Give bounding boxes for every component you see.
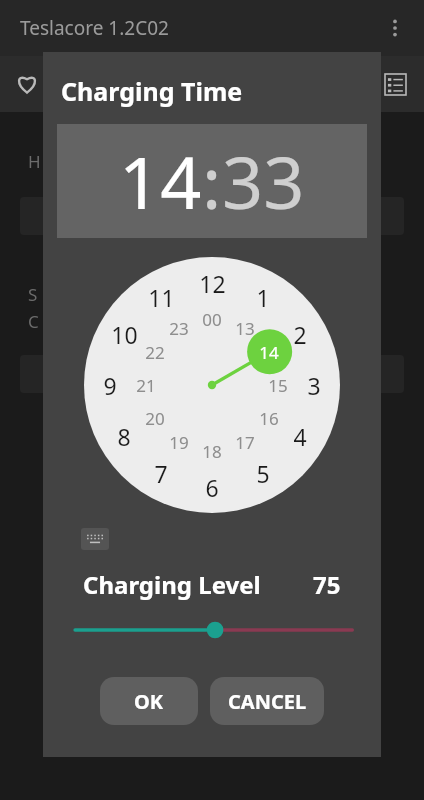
staticText: 4 [293,421,307,452]
staticText: 14 [259,341,279,364]
button[interactable]: 15 [263,370,293,400]
staticText: 7 [154,458,168,489]
staticText: 13 [235,317,255,340]
staticText: 9 [103,370,117,401]
button[interactable]: 8 [107,419,141,453]
staticText: S [28,283,38,306]
button[interactable]: 21 [131,370,161,400]
staticText: H [28,150,41,173]
staticText: 11 [148,282,175,313]
staticText: 16 [259,407,279,430]
staticText: 20 [145,407,165,430]
staticText: 10 [111,319,138,350]
button[interactable]: 14 [254,337,284,367]
staticText: 00 [202,308,222,331]
staticText: CANCEL [228,688,307,715]
staticText: 5 [256,458,270,489]
button[interactable]: Favorite [4,61,50,107]
button[interactable]: 00 [197,304,227,334]
staticText: 3 [307,370,321,401]
button[interactable]: More options [372,5,418,51]
staticText: C [28,310,39,333]
staticText: 15 [268,374,288,397]
button[interactable]: 16 [254,403,284,433]
button[interactable]: 1 [246,280,280,314]
button[interactable]: Switch to keyboard input [81,528,109,550]
staticText: 1 [256,282,270,313]
button[interactable]: 11 [144,280,178,314]
staticText: 6 [205,472,219,503]
button[interactable]: 18 [197,436,227,466]
button[interactable]: 22 [140,337,170,367]
staticText: 17 [235,431,255,454]
button[interactable]: 6 [195,470,229,504]
button[interactable]: Hour selector clock [84,257,340,513]
staticText: OK [134,688,164,715]
button[interactable]: 4 [283,419,317,453]
button[interactable]: Charging Level [83,568,341,601]
button[interactable]: 3 [297,368,331,402]
button[interactable]: 33 [222,132,305,230]
button[interactable]: 12 [195,266,229,300]
staticText: 18 [202,440,222,463]
staticText: Teslacore 1.2C02 [20,15,169,41]
button[interactable]: 23 [164,313,194,343]
button[interactable]: 19 [164,427,194,457]
button[interactable]: 13 [230,313,260,343]
staticText: 2 [293,319,307,350]
staticText: 23 [169,317,189,340]
staticText: 12 [199,268,226,299]
staticText: Charging Time [61,74,243,108]
button[interactable]: 2 [283,317,317,351]
staticText: : [202,132,222,230]
staticText: Charging Level [83,568,261,601]
button[interactable]: CANCEL [210,677,324,725]
staticText: 22 [145,341,165,364]
button[interactable]: 10 [107,317,141,351]
button[interactable]: 17 [230,427,260,457]
button[interactable]: OK [100,677,198,725]
button[interactable]: 20 [140,403,170,433]
staticText: 19 [169,431,189,454]
button[interactable]: Charging level slider [43,617,381,643]
staticText: 75 [313,568,341,601]
button[interactable]: 14 [119,132,202,230]
button[interactable]: 5 [246,456,280,490]
button[interactable]: 7 [144,456,178,490]
staticText: 21 [136,374,156,397]
button[interactable]: 9 [93,368,127,402]
staticText: 8 [117,421,131,452]
button[interactable]: List view [372,61,418,107]
